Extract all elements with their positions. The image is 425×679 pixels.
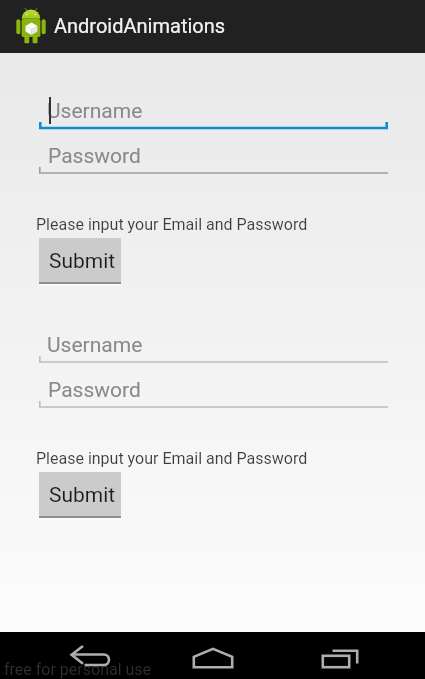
button[interactable]: Back [60,640,120,678]
staticText: Password [48,378,141,403]
button[interactable]: Home [183,639,243,677]
button[interactable]: Recent apps [310,640,370,678]
staticText: Submit [49,249,116,274]
button[interactable]: Password [39,136,388,180]
button[interactable]: Submit [39,238,121,286]
button[interactable]: AndroidAnimations [0,0,425,53]
staticText: AndroidAnimations [54,14,226,37]
staticText: Please input your Email and Password [36,215,308,234]
staticText: Username [47,99,143,124]
staticText: Please input your Email and Password [36,449,308,468]
staticText: Password [48,144,141,169]
button[interactable]: Submit [39,472,121,520]
staticText: Submit [49,483,116,508]
staticText: free for personal use [4,660,152,679]
button[interactable]: Password [39,370,388,414]
button[interactable]: Username [39,91,388,135]
staticText: Username [47,333,143,358]
button[interactable]: Username [39,325,388,369]
